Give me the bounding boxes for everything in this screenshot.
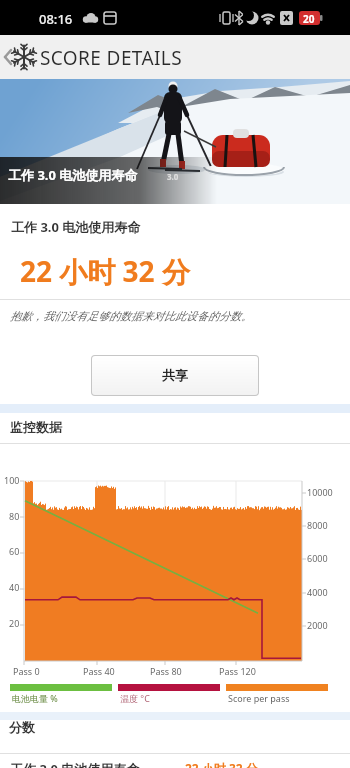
staticText: 20: [9, 617, 20, 629]
staticText: 3.0: [167, 171, 179, 182]
staticText: Pass 120: [219, 665, 256, 677]
staticText: Pass 0: [13, 665, 40, 677]
staticText: 共享: [162, 367, 188, 383]
staticText: 工作 3.0 电池使用寿命: [8, 166, 138, 184]
staticText: 分数: [9, 719, 35, 735]
staticText: 22 小时 32 分: [185, 760, 258, 768]
staticText: SCORE DETAILS: [40, 45, 183, 71]
staticText: 温度 °C: [120, 692, 150, 704]
staticText: 抱歉，我们没有足够的数据来对比此设备的分数。: [10, 309, 252, 323]
staticText: 08:16: [39, 10, 73, 28]
staticText: 40: [9, 581, 20, 593]
staticText: 2000: [307, 619, 328, 631]
button[interactable]: 共享: [91, 355, 259, 396]
button[interactable]: SCORE DETAILS: [0, 35, 350, 79]
staticText: 100: [4, 474, 20, 486]
staticText: 10000: [307, 486, 333, 498]
staticText: 80: [9, 510, 20, 522]
staticText: 4000: [307, 586, 328, 598]
staticText: 60: [9, 545, 20, 557]
staticText: 20: [303, 12, 315, 26]
staticText: Pass 80: [150, 665, 182, 677]
staticText: Score per pass: [228, 692, 290, 704]
staticText: 8000: [307, 519, 328, 531]
staticText: 工作 3.0 电池使用寿命: [11, 218, 141, 236]
staticText: 工作 3.0 电池使用寿命: [10, 760, 140, 768]
staticText: 6000: [307, 552, 328, 564]
staticText: 监控数据: [10, 419, 62, 435]
staticText: 电池电量 %: [12, 692, 58, 704]
staticText: 22 小时 32 分: [20, 252, 190, 290]
staticText: Pass 40: [83, 665, 115, 677]
